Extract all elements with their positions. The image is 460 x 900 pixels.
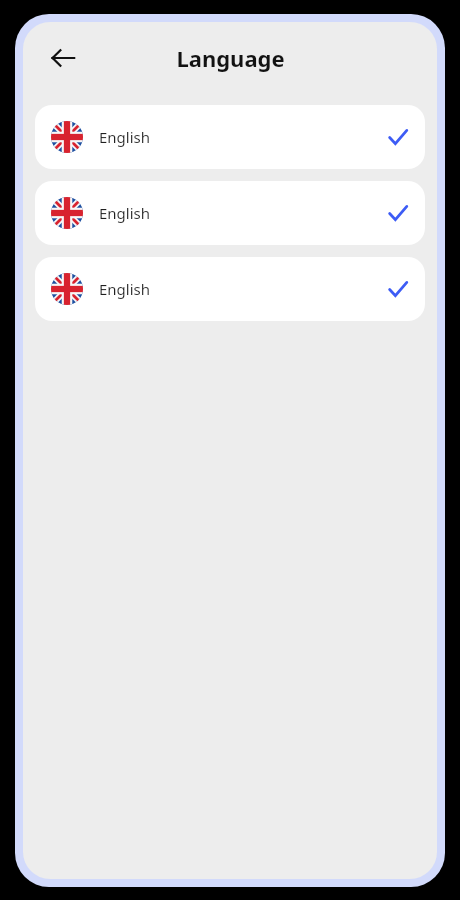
staticText: English bbox=[99, 127, 151, 147]
button[interactable]: English bbox=[35, 181, 425, 245]
staticText: English bbox=[99, 279, 151, 299]
staticText: English bbox=[99, 203, 151, 223]
staticText: Language bbox=[176, 43, 285, 73]
button[interactable]: English bbox=[35, 105, 425, 169]
button[interactable]: English bbox=[35, 257, 425, 321]
button[interactable]: Back bbox=[41, 36, 85, 80]
